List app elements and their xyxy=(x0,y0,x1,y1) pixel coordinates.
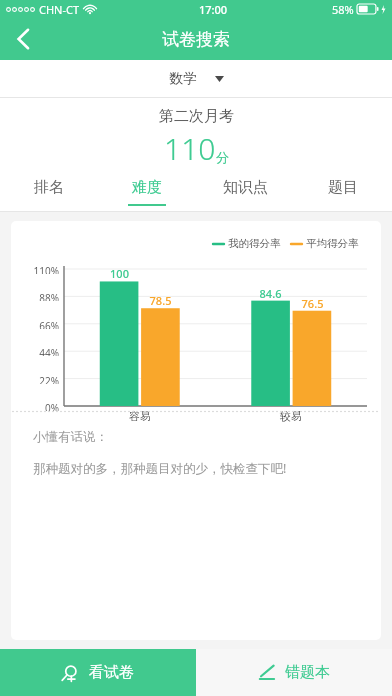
staticText: 22% xyxy=(39,374,59,384)
staticText: 78.5 xyxy=(137,293,184,308)
staticText: 66% xyxy=(39,319,59,329)
staticText: 84.6 xyxy=(247,286,294,301)
staticText: CHN-CT xyxy=(39,2,80,17)
button[interactable]: Back xyxy=(0,18,46,60)
button[interactable]: 数学 xyxy=(157,66,236,92)
staticText: 知识点 xyxy=(223,178,268,197)
staticText: 题目 xyxy=(328,178,358,197)
staticText: 排名 xyxy=(34,178,64,197)
staticText: 数学 xyxy=(169,70,197,88)
staticText: 0% xyxy=(44,401,59,411)
staticText: 88% xyxy=(39,291,59,301)
staticText: 小懂有话说： xyxy=(33,429,108,445)
button[interactable]: 排名 xyxy=(0,173,98,211)
button[interactable]: 难度 xyxy=(98,173,196,211)
staticText: 第二次月考 xyxy=(159,107,234,126)
staticText: 容易 xyxy=(129,409,151,423)
button[interactable]: 知识点 xyxy=(196,173,294,211)
staticText: 58% xyxy=(332,2,354,17)
staticText: 100 xyxy=(96,266,143,281)
staticText: 那种题对的多，那种题目对的少，快检查下吧! xyxy=(33,460,287,477)
button[interactable]: 题目 xyxy=(294,173,392,211)
staticText: 平均得分率 xyxy=(306,237,359,250)
staticText: 110% xyxy=(33,264,59,274)
staticText: 44% xyxy=(39,346,59,356)
staticText: 难度 xyxy=(132,178,162,197)
staticText: 错题本 xyxy=(285,663,330,682)
button[interactable]: 错题本 xyxy=(196,649,392,696)
staticText: 分 xyxy=(216,149,229,165)
staticText: 17:00 xyxy=(199,2,228,17)
staticText: 76.5 xyxy=(289,296,336,311)
staticText: 试卷搜索 xyxy=(162,29,230,50)
staticText: 较易 xyxy=(280,409,302,423)
staticText: 110 xyxy=(164,128,216,169)
staticText: 看试卷 xyxy=(89,663,134,682)
button[interactable]: 看试卷 xyxy=(0,649,196,696)
staticText: 我的得分率 xyxy=(228,237,281,250)
